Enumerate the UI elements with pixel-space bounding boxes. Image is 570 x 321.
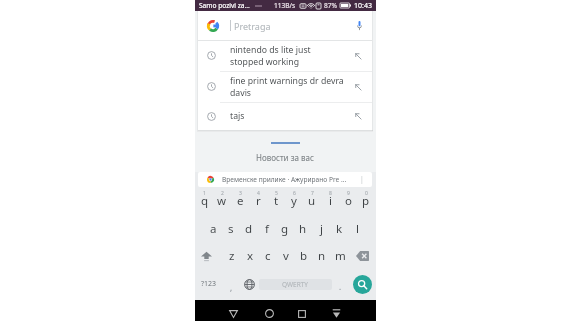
button[interactable]: 0 xyxy=(357,187,375,213)
staticText: 1 xyxy=(203,190,206,197)
button[interactable]: Home xyxy=(257,303,281,321)
staticText: 10:43 xyxy=(354,1,372,11)
button[interactable]: Shift xyxy=(195,243,218,269)
staticText: g xyxy=(281,221,289,237)
staticText: davis xyxy=(230,87,252,99)
button[interactable]: tajs xyxy=(198,102,372,130)
button[interactable]: 4 xyxy=(249,187,267,213)
staticText: n xyxy=(318,248,326,264)
button[interactable]: Временске прилике · Ажурирано Pre ... xyxy=(198,172,372,187)
button[interactable]: Hide keyboard xyxy=(324,303,348,321)
staticText: Pretraga xyxy=(234,20,271,32)
staticText: q xyxy=(201,193,209,209)
staticText: l xyxy=(356,221,359,237)
staticText: t xyxy=(274,193,279,209)
button[interactable]: Search xyxy=(353,275,372,294)
button[interactable]: m xyxy=(331,243,349,269)
staticText: h xyxy=(299,221,307,237)
staticText: u xyxy=(308,193,316,209)
staticText: j xyxy=(320,221,323,237)
button[interactable]: 7 xyxy=(303,187,321,213)
button[interactable]: d xyxy=(240,216,258,242)
button[interactable]: g xyxy=(276,216,294,242)
staticText: ?123 xyxy=(201,279,217,289)
button[interactable]: b xyxy=(295,243,313,269)
staticText: 7 xyxy=(311,190,314,197)
staticText: m xyxy=(335,248,346,264)
staticText: . xyxy=(339,281,342,292)
button[interactable]: v xyxy=(277,243,295,269)
button[interactable]: Voice search xyxy=(356,20,363,31)
staticText: 2 xyxy=(221,190,224,197)
staticText: y xyxy=(291,193,297,209)
staticText: r xyxy=(256,193,261,209)
staticText: 4 xyxy=(257,190,260,197)
button[interactable]: Pretraga xyxy=(198,11,372,40)
button[interactable]: k xyxy=(330,216,348,242)
button[interactable]: 9 xyxy=(339,187,357,213)
staticText: Временске прилике · Ажурирано Pre ... xyxy=(222,175,347,184)
button[interactable]: , xyxy=(223,270,239,298)
staticText: , xyxy=(230,282,233,293)
staticText: c xyxy=(265,248,271,264)
staticText: s xyxy=(228,221,234,237)
staticText: QWERTY xyxy=(282,280,309,289)
staticText: x xyxy=(247,248,254,264)
staticText: stopped working xyxy=(230,56,300,68)
staticText: 5 xyxy=(275,190,278,197)
button[interactable]: s xyxy=(222,216,240,242)
button[interactable]: f xyxy=(258,216,276,242)
button[interactable]: Back xyxy=(221,303,245,321)
staticText: 6 xyxy=(293,190,296,197)
staticText: i xyxy=(329,193,332,209)
button[interactable]: Recent apps xyxy=(290,303,314,321)
staticText: b xyxy=(300,248,308,264)
staticText: 0 xyxy=(365,190,368,197)
button[interactable]: Use this suggestion xyxy=(354,52,362,60)
button[interactable]: fine print warnings dr devra xyxy=(198,71,372,102)
staticText: nintendo ds lite just xyxy=(230,44,311,56)
button[interactable]: Use this suggestion xyxy=(354,112,362,120)
button[interactable]: z xyxy=(223,243,241,269)
staticText: f xyxy=(265,221,269,237)
staticText: 9 xyxy=(347,190,350,197)
button[interactable]: n xyxy=(313,243,331,269)
staticText: 3 xyxy=(239,190,242,197)
button[interactable]: 6 xyxy=(285,187,303,213)
button[interactable]: Change language xyxy=(239,270,259,298)
staticText: z xyxy=(229,248,235,264)
button[interactable]: 8 xyxy=(321,187,339,213)
button[interactable]: x xyxy=(241,243,259,269)
staticText: Новости за вас xyxy=(256,152,315,163)
staticText: 8 xyxy=(329,190,332,197)
staticText: a xyxy=(210,221,217,237)
staticText: v xyxy=(283,248,289,264)
button[interactable]: 5 xyxy=(267,187,285,213)
staticText: w xyxy=(217,193,227,209)
staticText: k xyxy=(336,221,343,237)
button[interactable]: Use this suggestion xyxy=(354,83,362,91)
staticText: e xyxy=(237,193,244,209)
staticText: fine print warnings dr devra xyxy=(230,75,344,87)
button[interactable]: nintendo ds lite just xyxy=(198,40,372,71)
staticText: d xyxy=(245,221,253,237)
button[interactable]: j xyxy=(312,216,330,242)
staticText: Samo pozivi za... xyxy=(199,1,250,10)
staticText: o xyxy=(345,193,352,209)
button[interactable]: 2 xyxy=(213,187,231,213)
button[interactable]: l xyxy=(348,216,366,242)
staticText: p xyxy=(362,193,370,209)
button[interactable]: ?123 xyxy=(195,270,223,298)
button[interactable]: Backspace xyxy=(349,243,376,269)
staticText: tajs xyxy=(230,110,245,122)
button[interactable]: 3 xyxy=(231,187,249,213)
button[interactable]: h xyxy=(294,216,312,242)
button[interactable]: c xyxy=(259,243,277,269)
staticText: 87% xyxy=(324,1,338,10)
button[interactable]: QWERTY xyxy=(259,279,332,290)
staticText: 113B/s xyxy=(274,1,296,10)
button[interactable]: a xyxy=(204,216,222,242)
button[interactable]: 1 xyxy=(196,187,213,213)
